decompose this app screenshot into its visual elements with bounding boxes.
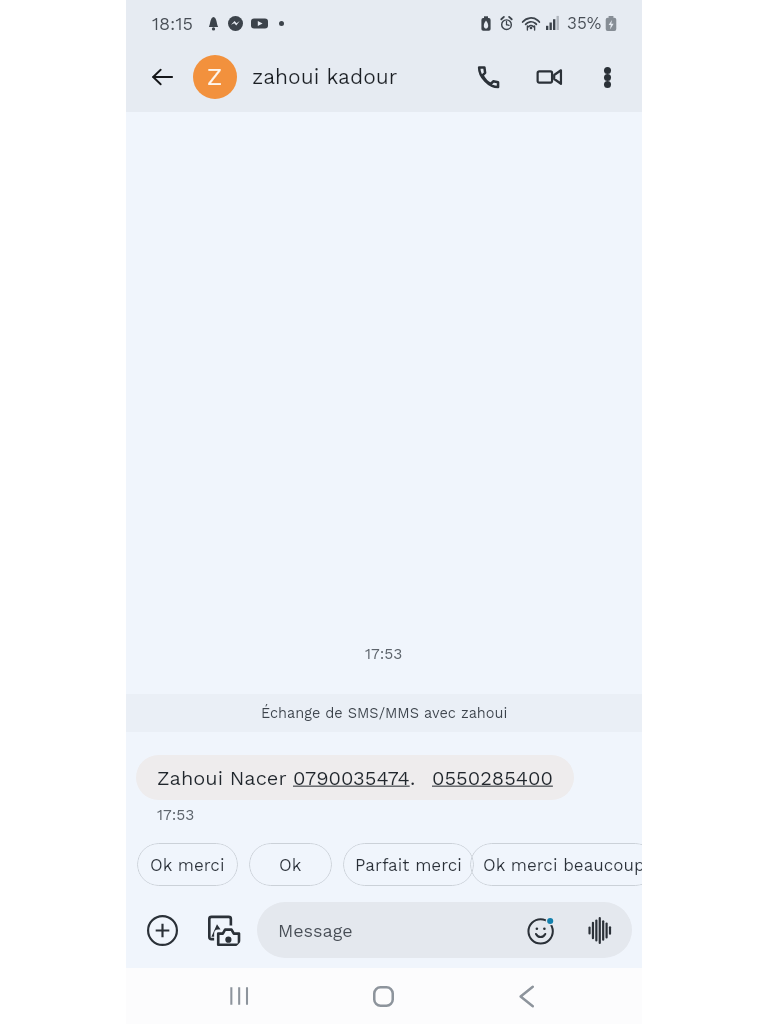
button[interactable]: Add attachment (141, 909, 183, 951)
button[interactable]: Zahoui Nacer (136, 755, 574, 800)
button[interactable]: Ok (249, 843, 332, 886)
staticText: . (410, 766, 416, 789)
button[interactable]: Gallery and camera (202, 909, 244, 951)
staticText: 18:15 (152, 13, 193, 34)
button[interactable]: Call (466, 55, 510, 99)
staticText: Zahoui Nacer (157, 766, 293, 789)
staticText: Z (207, 63, 223, 91)
button[interactable]: Parfait merci (343, 843, 474, 886)
staticText: 17:53 (157, 806, 195, 824)
button[interactable]: Home (361, 974, 405, 1018)
staticText: 0790035474 (293, 766, 410, 789)
button[interactable]: More options (587, 57, 627, 97)
button[interactable]: Back (504, 974, 548, 1018)
button[interactable]: Message (257, 902, 632, 958)
button[interactable]: Video call (527, 55, 571, 99)
staticText: Ok merci (150, 855, 225, 875)
staticText: Message (278, 920, 353, 941)
button[interactable]: Back (140, 55, 184, 99)
staticText: Ok (279, 855, 302, 875)
staticText: Échange de SMS/MMS avec zahoui (261, 705, 508, 722)
staticText: zahoui kadour (252, 64, 398, 89)
staticText: 35% (567, 13, 602, 33)
staticText: Parfait merci (355, 855, 462, 875)
button[interactable]: Ok merci beaucoup (470, 843, 657, 886)
button[interactable]: Recent apps (216, 974, 260, 1018)
staticText: Ok merci beaucoup (483, 855, 645, 875)
button[interactable]: Contact photo (193, 55, 237, 99)
button[interactable]: Voice message (580, 911, 618, 949)
staticText: 17:53 (365, 645, 403, 663)
button[interactable]: Emoji (522, 911, 560, 949)
staticText: 0550285400 (432, 766, 553, 789)
button[interactable]: Ok merci (137, 843, 238, 886)
